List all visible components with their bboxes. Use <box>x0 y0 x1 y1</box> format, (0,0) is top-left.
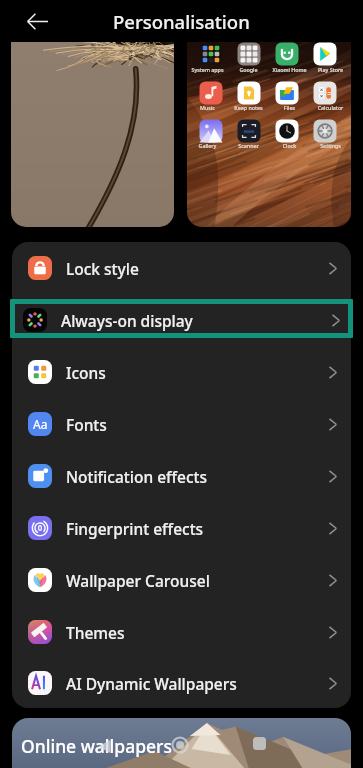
staticText: Personalisation <box>113 9 250 34</box>
staticText: Wallpaper Carousel <box>66 570 210 591</box>
button[interactable]: Notification effects <box>12 450 351 502</box>
button[interactable] <box>11 42 174 227</box>
staticText: Aa <box>33 416 48 432</box>
button[interactable]: Lock style <box>12 242 351 294</box>
staticText: Gallery <box>187 142 228 149</box>
staticText: Play Store <box>310 66 351 73</box>
button[interactable]: Fingerprint effects <box>12 502 351 554</box>
button[interactable]: Wallpaper Carousel <box>12 554 351 606</box>
staticText: AI Dynamic Wallpapers <box>66 673 237 694</box>
staticText: Files <box>269 104 310 111</box>
button[interactable]: Online wallpapers <box>12 718 351 768</box>
staticText: Keep notes <box>228 104 269 111</box>
button[interactable]: Icons <box>12 346 351 398</box>
staticText: Themes <box>66 622 125 643</box>
staticText: Icons <box>66 362 106 383</box>
button[interactable]: System apps <box>187 42 351 227</box>
staticText: Notification effects <box>66 466 208 487</box>
staticText: Settings <box>310 142 351 149</box>
staticText: Calculator <box>310 104 351 111</box>
button[interactable]: Always-on display <box>12 294 351 346</box>
staticText: Fonts <box>66 414 107 435</box>
button[interactable]: Themes <box>12 606 351 658</box>
staticText: System apps <box>187 66 228 73</box>
staticText: Online wallpapers <box>21 734 172 758</box>
staticText: Lock style <box>66 258 139 279</box>
staticText: Xiaomi Home <box>269 66 310 73</box>
staticText: Music <box>187 104 228 111</box>
button[interactable]: Aa <box>12 398 351 450</box>
staticText: Clock <box>269 142 310 149</box>
staticText: Google <box>228 66 269 73</box>
button[interactable]: Back <box>16 0 58 42</box>
button[interactable]: AI Dynamic Wallpapers <box>12 658 351 708</box>
staticText: Always-on display <box>61 310 193 331</box>
staticText: Scanner <box>228 142 269 149</box>
staticText: Fingerprint effects <box>66 518 204 539</box>
